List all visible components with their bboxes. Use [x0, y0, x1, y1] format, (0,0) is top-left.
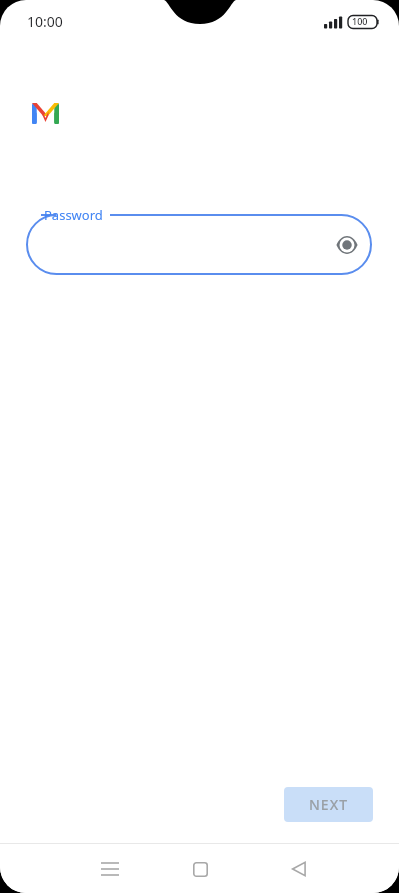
button[interactable]: Home: [176, 847, 224, 891]
button[interactable]: Show password: [330, 228, 363, 261]
staticText: 10:00: [27, 12, 63, 31]
button[interactable]: Back: [275, 847, 323, 891]
staticText: 100: [352, 15, 368, 27]
button[interactable]: Recent apps: [86, 847, 134, 891]
button[interactable]: [26, 214, 372, 275]
button[interactable]: NEXT: [284, 787, 373, 822]
staticText: Password: [44, 206, 103, 224]
staticText: NEXT: [309, 795, 349, 814]
